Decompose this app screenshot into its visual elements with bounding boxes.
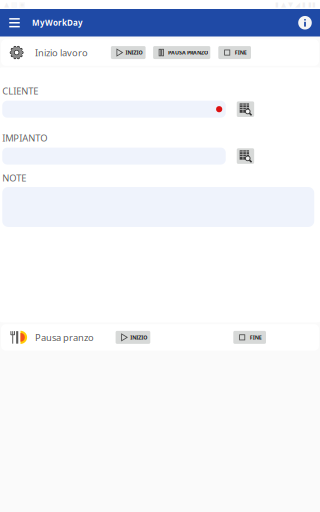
button[interactable]: Informazioni [290, 9, 320, 36]
staticText: ▮ ▲ ▼ ◢ ▮ ▮▮ [275, 1, 316, 8]
staticText: IMPIANTO [2, 132, 47, 144]
button[interactable]: Cerca [237, 148, 254, 164]
staticText: ▲ ▤ ▣ [4, 1, 25, 8]
button[interactable]: Cerca [237, 101, 254, 117]
button[interactable]: INIZIO [111, 46, 146, 59]
staticText: Pausa pranzo [35, 331, 94, 344]
button[interactable]: INIZIO [116, 331, 150, 344]
staticText: INIZIO [130, 334, 147, 341]
staticText: NOTE [2, 172, 26, 184]
staticText: MyWorkDay [32, 17, 83, 28]
staticText: INIZIO [126, 49, 143, 56]
button[interactable]: FINE [218, 46, 251, 59]
staticText: CLIENTE [2, 85, 38, 97]
button[interactable]: Menu [0, 9, 29, 36]
staticText: FINE [250, 334, 262, 341]
staticText: PAUSA PRANZO [168, 49, 208, 56]
button[interactable]: FINE [233, 331, 266, 344]
staticText: FINE [235, 49, 247, 56]
button[interactable]: PAUSA PRANZO [153, 46, 210, 59]
staticText: Inizio lavoro [35, 46, 88, 59]
